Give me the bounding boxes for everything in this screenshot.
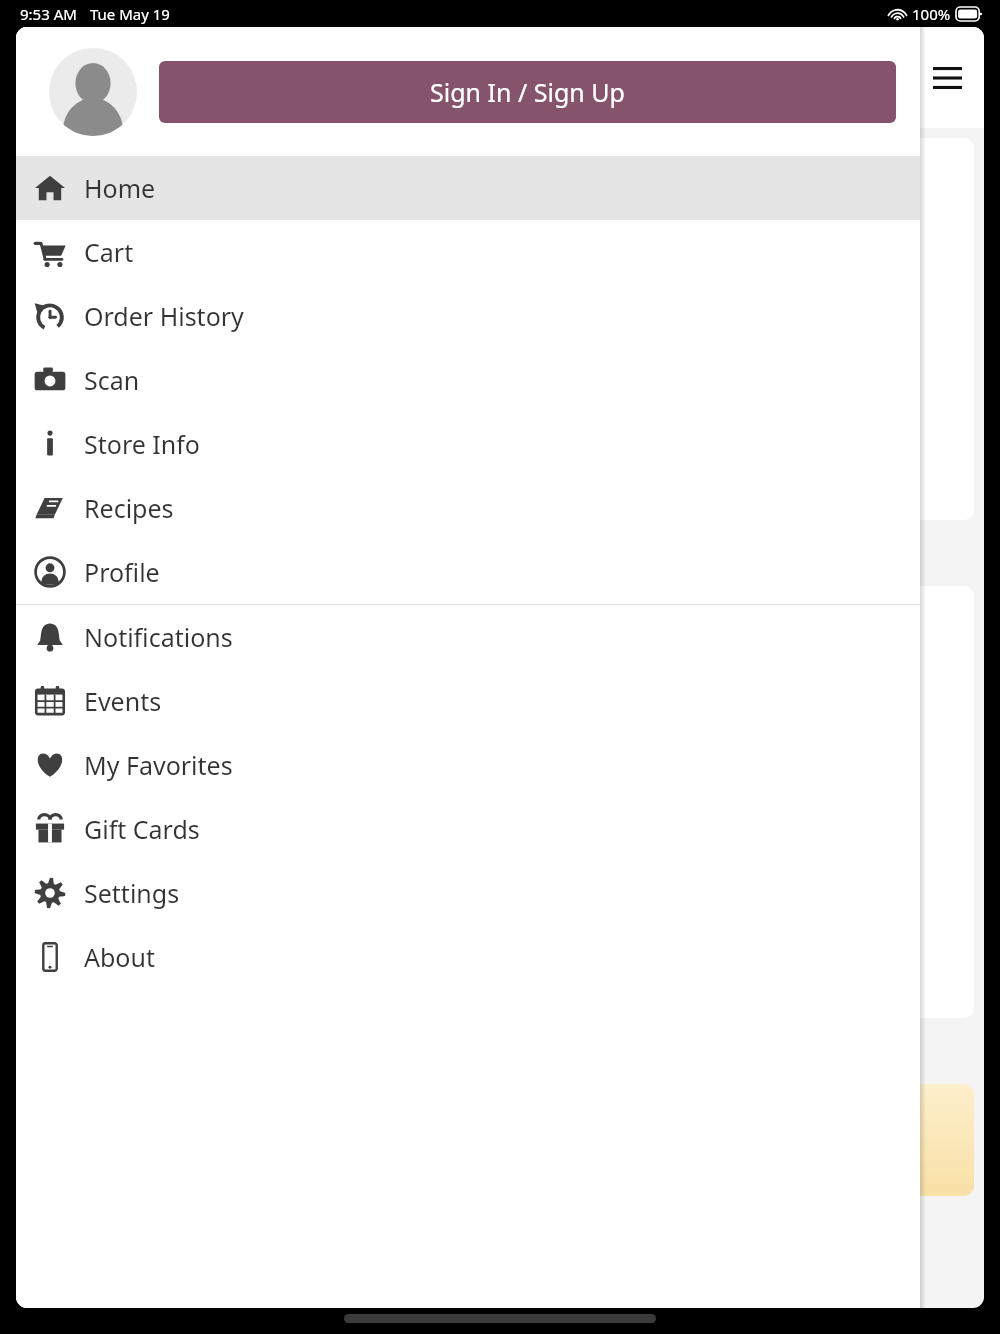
- button[interactable]: About: [16, 925, 920, 989]
- staticText: Profile: [84, 555, 160, 589]
- staticText: Scan: [84, 363, 140, 397]
- staticText: Gift Cards: [84, 812, 200, 846]
- staticText: Store Info: [84, 427, 200, 461]
- button[interactable]: Store Info: [16, 412, 920, 476]
- staticText: $69.99: [40, 904, 119, 938]
- button[interactable]: Events: [16, 669, 920, 733]
- staticText: STARS: [36, 536, 113, 573]
- staticText: About: [84, 940, 155, 974]
- button[interactable]: Gift Cards: [16, 797, 920, 861]
- staticText: Settings: [84, 876, 180, 910]
- button[interactable]: Scan: [16, 348, 920, 412]
- button[interactable]: Order History: [16, 284, 920, 348]
- button[interactable]: My Favorites: [16, 733, 920, 797]
- staticText: 1792: [40, 969, 95, 1002]
- button[interactable]: Profile: [16, 540, 920, 604]
- button[interactable]: Home: [16, 156, 920, 220]
- staticText: Home: [84, 171, 156, 205]
- staticText: Cart: [84, 235, 134, 269]
- button[interactable]: Open navigation menu: [918, 49, 976, 107]
- button[interactable]: Recipes: [16, 476, 920, 540]
- staticText: 3.0: [51, 638, 73, 658]
- staticText: Events: [84, 684, 162, 718]
- staticText: Tue May 19: [90, 4, 170, 24]
- staticText: Notifications: [84, 620, 233, 654]
- staticText: Recipes: [84, 491, 174, 525]
- button[interactable]: Sign In / Sign Up: [159, 61, 896, 123]
- staticText: Size NA: [40, 940, 110, 967]
- button[interactable]: Settings: [16, 861, 920, 925]
- staticText: 9:53 AM: [20, 4, 77, 24]
- staticText: Order History: [84, 299, 244, 333]
- button[interactable]: Cart: [16, 220, 920, 284]
- staticText: My Favorites: [84, 748, 233, 782]
- staticText: Sign In / Sign Up: [430, 75, 625, 109]
- button[interactable]: Notifications: [16, 605, 920, 669]
- staticText: 100%: [912, 4, 951, 24]
